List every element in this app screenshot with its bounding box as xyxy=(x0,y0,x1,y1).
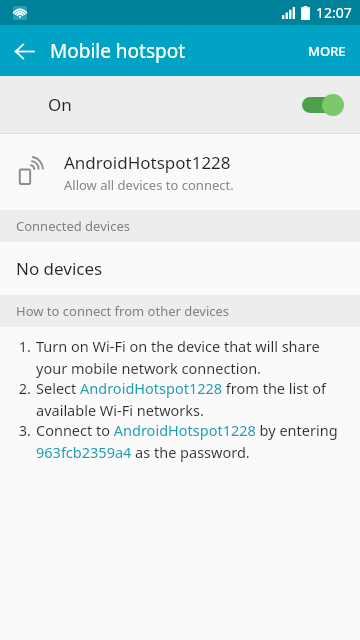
staticText: 12:07 xyxy=(316,3,352,22)
staticText: Connected devices xyxy=(16,217,130,235)
button[interactable]: AndroidHotspot1228 xyxy=(0,134,360,210)
staticText: AndroidHotspot1228 xyxy=(64,151,231,174)
staticText: Allow all devices to connect. xyxy=(64,176,234,194)
button[interactable]: MORE xyxy=(294,25,360,76)
staticText: MORE xyxy=(308,42,346,60)
button[interactable]: Navigate up xyxy=(0,27,48,75)
staticText: 3. xyxy=(18,420,31,440)
staticText: How to connect from other devices xyxy=(16,302,230,320)
staticText: 2. xyxy=(18,378,31,398)
staticText: 1. xyxy=(18,336,31,356)
staticText: Connect to AndroidHotspot1228 by enterin… xyxy=(36,420,346,462)
button[interactable]: On xyxy=(0,76,360,133)
staticText: Mobile hotspot xyxy=(50,38,186,64)
staticText: No devices xyxy=(16,257,103,280)
staticText: On xyxy=(48,93,72,116)
staticText: Select AndroidHotspot1228 from the list … xyxy=(36,378,346,420)
staticText: Turn on Wi-Fi on the device that will sh… xyxy=(36,336,346,378)
